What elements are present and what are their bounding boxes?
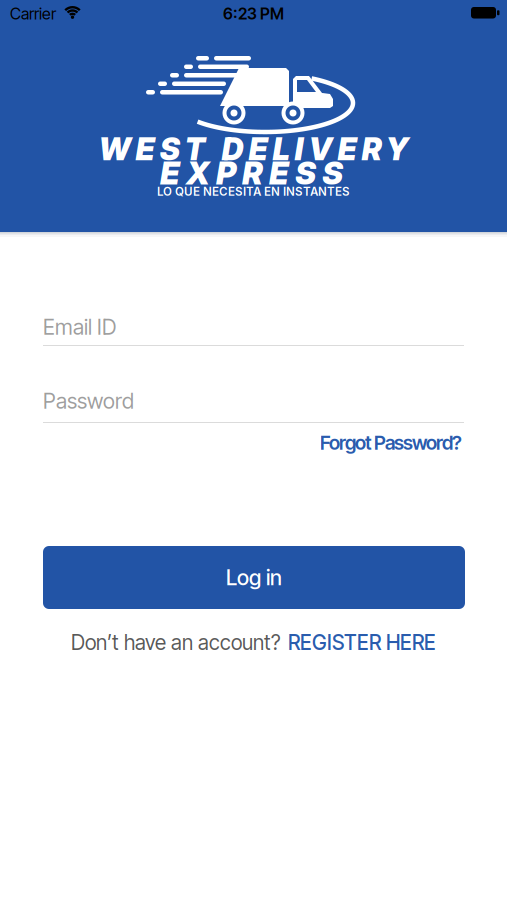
staticText: Don’t have an account? bbox=[71, 630, 281, 655]
staticText: WEST DELIVERY bbox=[98, 130, 408, 167]
staticText: Log in bbox=[226, 565, 282, 590]
staticText: Forgot Password? bbox=[320, 431, 462, 454]
staticText: REGISTER HERE bbox=[288, 630, 436, 655]
button[interactable]: Password bbox=[43, 388, 464, 424]
staticText: Email ID bbox=[43, 314, 116, 340]
button[interactable]: Don’t have an account? bbox=[71, 630, 436, 655]
button[interactable]: Forgot Password? bbox=[320, 431, 462, 454]
staticText: 6:23 PM bbox=[223, 4, 284, 23]
button[interactable]: Email ID bbox=[43, 314, 464, 350]
staticText: Password bbox=[43, 388, 134, 414]
staticText: EXPRESS bbox=[160, 154, 343, 192]
button[interactable]: Log in bbox=[43, 546, 465, 609]
staticText: Carrier bbox=[10, 4, 56, 23]
staticText: LO QUE NECESITA EN INSTANTES bbox=[157, 184, 350, 198]
